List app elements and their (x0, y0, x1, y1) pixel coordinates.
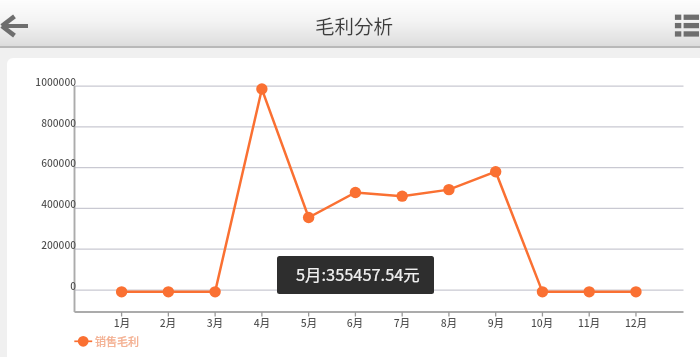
staticText: 2月 (144, 315, 192, 330)
button[interactable]: 销售毛利 (75, 333, 141, 351)
staticText: 4月 (238, 315, 286, 330)
staticText: 600000 (0, 155, 76, 170)
staticText: 9月 (472, 315, 520, 330)
staticText: 1000000 (0, 74, 76, 89)
staticText: 11月 (565, 315, 613, 330)
staticText: 7月 (378, 315, 426, 330)
staticText: 10月 (518, 315, 566, 330)
staticText: 销售毛利 (95, 333, 139, 349)
staticText: 1月 (98, 315, 146, 330)
staticText: 8月 (425, 315, 473, 330)
staticText: 3月 (191, 315, 239, 330)
staticText: 12月 (612, 315, 660, 330)
staticText: 400000 (0, 196, 76, 211)
staticText: 0 (0, 278, 76, 293)
button[interactable]: List view (654, 1, 700, 47)
staticText: 毛利分析 (315, 11, 394, 39)
staticText: 800000 (0, 115, 76, 130)
button[interactable]: Back (0, 1, 42, 47)
staticText: 200000 (0, 237, 76, 252)
staticText: 5月:355457.54元 (296, 262, 420, 286)
staticText: 6月 (331, 315, 379, 330)
staticText: 5月 (285, 315, 333, 330)
